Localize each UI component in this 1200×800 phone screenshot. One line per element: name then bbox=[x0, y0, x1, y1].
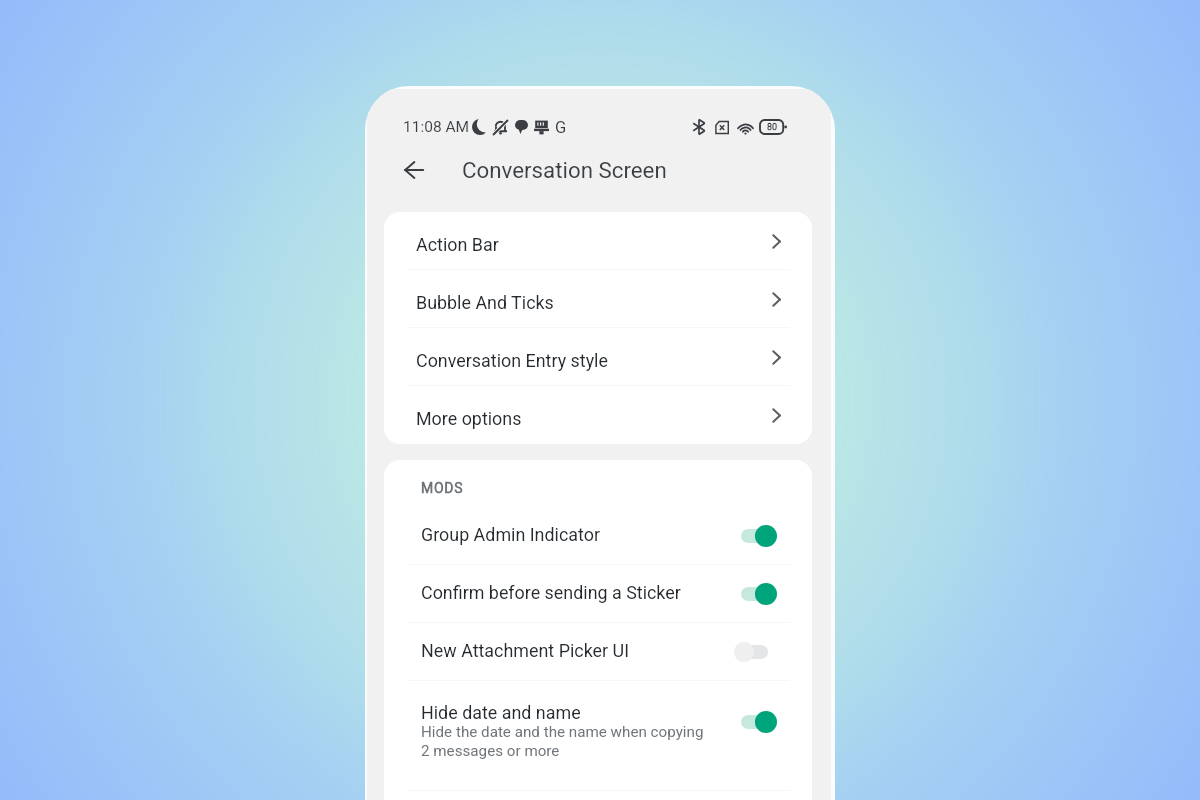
button[interactable]: Confirm before sending a Sticker bbox=[384, 565, 812, 623]
staticText: 11:08 AM bbox=[403, 118, 470, 136]
staticText: Hide the date and the name when copying … bbox=[421, 723, 704, 760]
staticText: New Attachment Picker UI bbox=[421, 640, 630, 661]
button[interactable]: Conversation Entry style bbox=[384, 328, 812, 386]
button[interactable]: Action Bar bbox=[384, 212, 812, 270]
button[interactable]: Back bbox=[393, 149, 435, 191]
staticText: More options bbox=[416, 408, 522, 429]
button[interactable]: New Attachment Picker UI bbox=[384, 623, 812, 681]
staticText: Confirm before sending a Sticker bbox=[421, 582, 681, 603]
button[interactable]: Hide date and name bbox=[384, 681, 812, 771]
button[interactable]: Group Admin Indicator bbox=[384, 507, 812, 565]
staticText: 80 bbox=[767, 122, 778, 133]
staticText: Action Bar bbox=[416, 234, 499, 255]
staticText: MODS bbox=[421, 480, 464, 496]
staticText: Hide date and name bbox=[421, 702, 581, 723]
button[interactable]: Bubble And Ticks bbox=[384, 270, 812, 328]
staticText: G bbox=[555, 118, 567, 137]
staticText: Bubble And Ticks bbox=[416, 292, 554, 313]
button[interactable]: More options bbox=[384, 386, 812, 444]
staticText: Group Admin Indicator bbox=[421, 524, 600, 545]
staticText: Conversation Entry style bbox=[416, 350, 608, 371]
staticText: Conversation Screen bbox=[462, 157, 667, 183]
